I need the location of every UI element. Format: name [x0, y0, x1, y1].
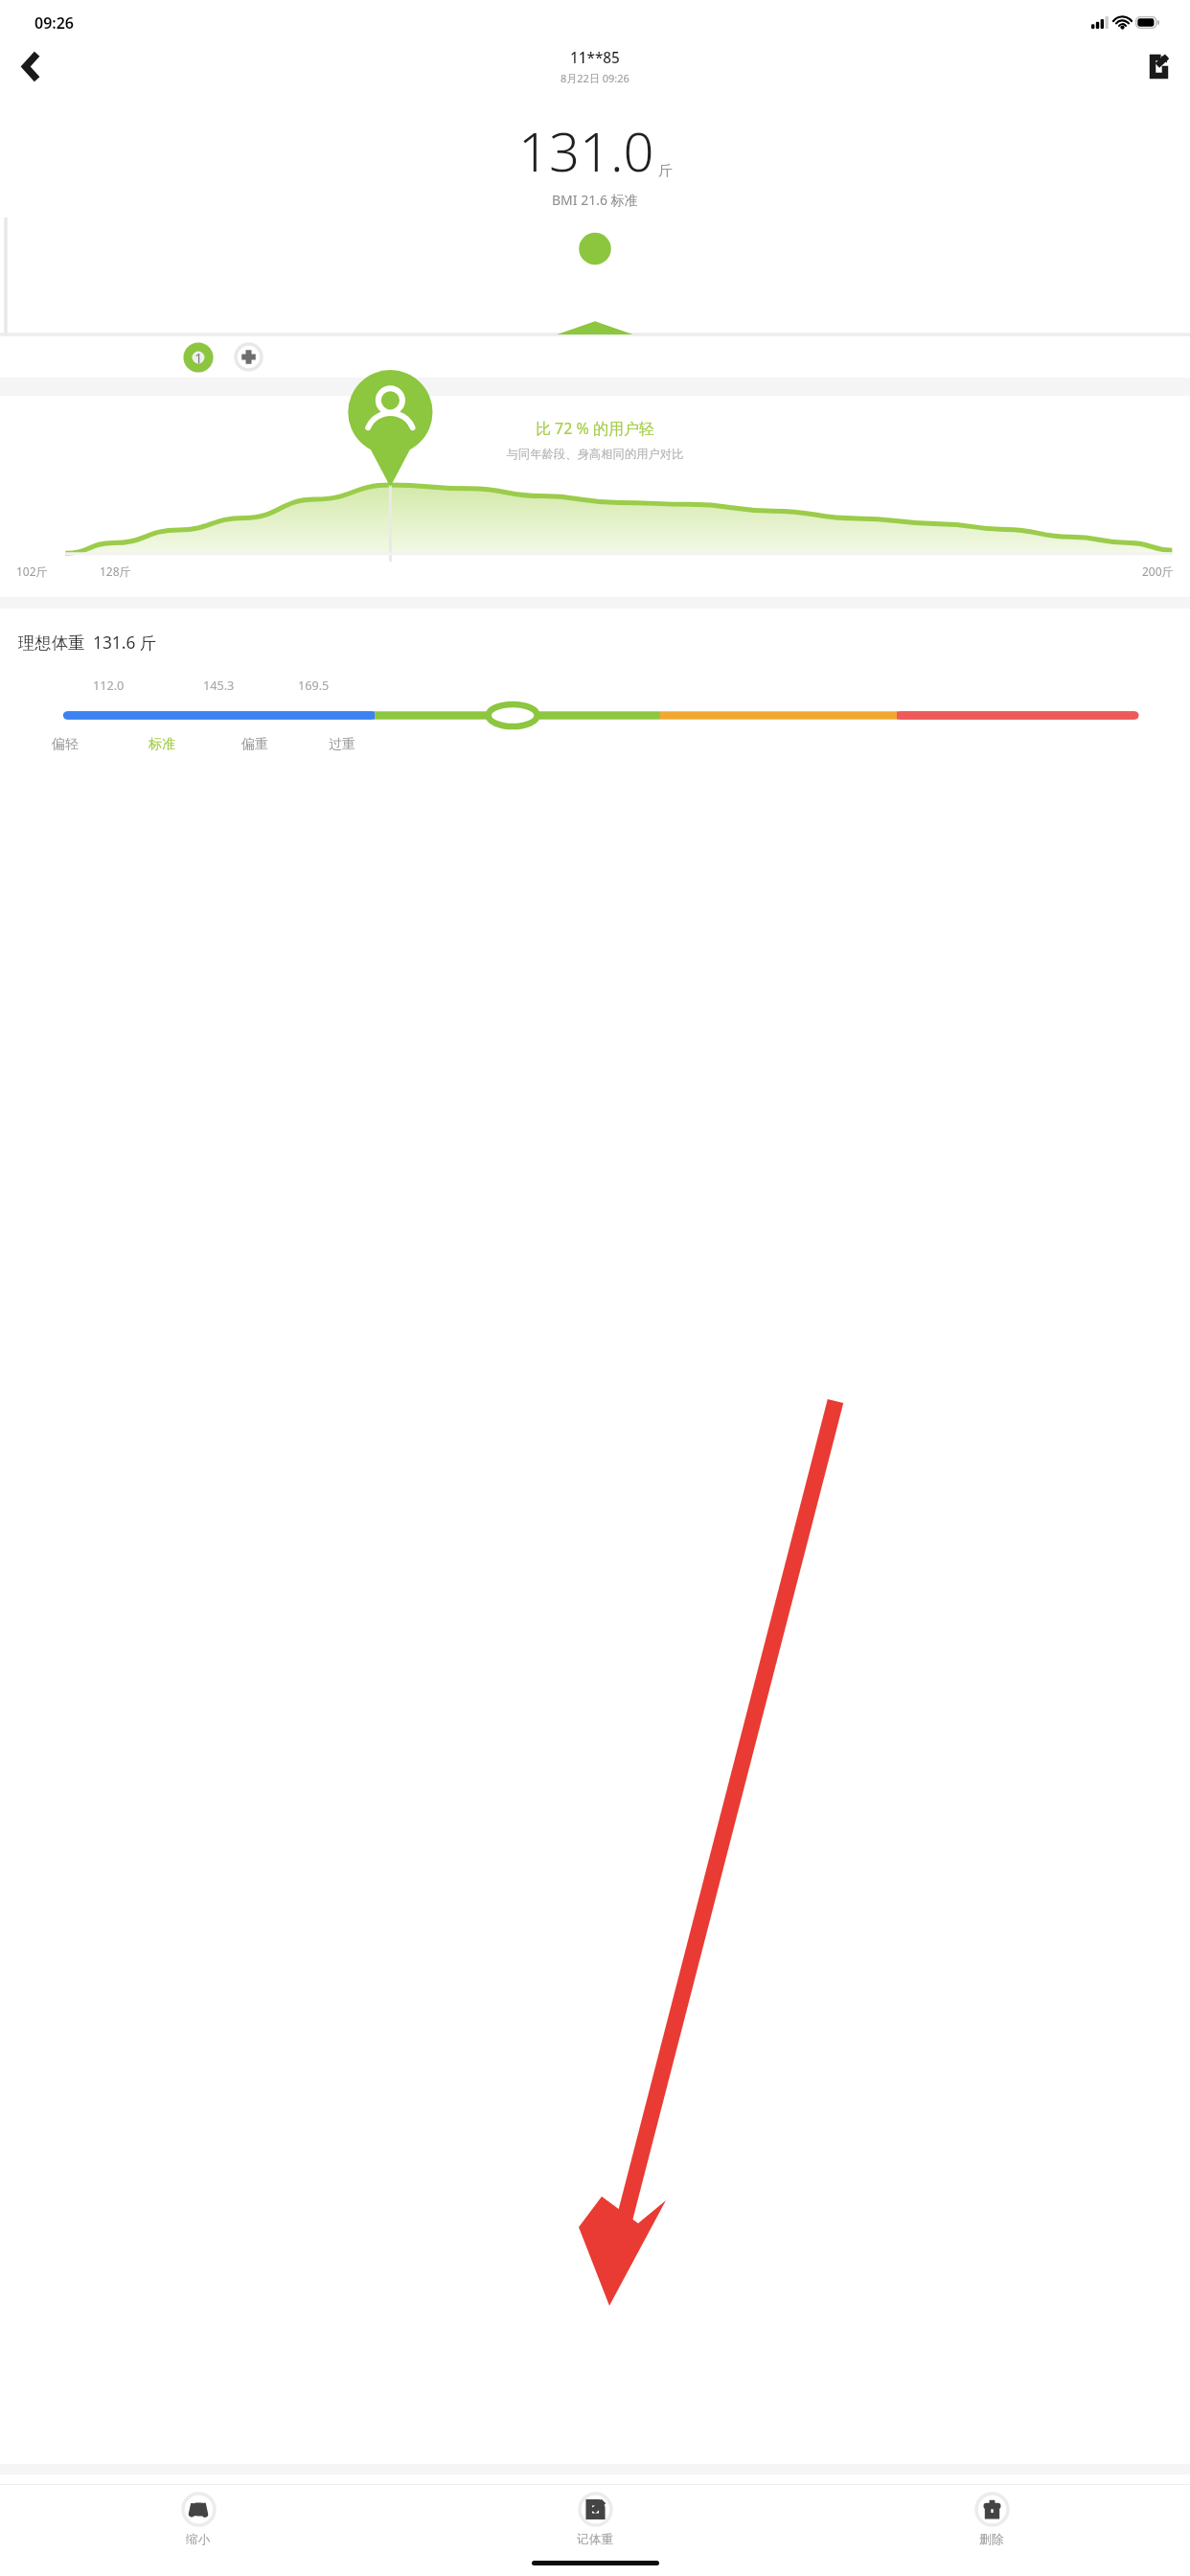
- button[interactable]: Share: [1142, 50, 1176, 83]
- staticText: 8月22日 09:26: [561, 71, 629, 85]
- staticText: 偏轻: [52, 736, 1190, 753]
- staticText: BMI 21.6 标准: [552, 191, 638, 209]
- button[interactable]: 删除: [793, 2485, 1190, 2554]
- staticText: 1: [195, 348, 203, 367]
- staticText: 比 72 % 的用户轻: [0, 418, 1190, 439]
- staticText: 斤: [658, 162, 673, 179]
- staticText: 200斤: [1142, 563, 1174, 579]
- button[interactable]: 1: [183, 342, 214, 373]
- staticText: 131.0: [518, 114, 654, 187]
- staticText: 记体重: [577, 2532, 613, 2547]
- staticText: 缩小: [186, 2532, 211, 2547]
- staticText: 删除: [979, 2532, 1004, 2547]
- staticText: 131.6 斤: [93, 631, 157, 654]
- staticText: 102斤: [16, 563, 48, 579]
- staticText: 理想体重: [18, 632, 85, 654]
- staticText: 偏重: [241, 736, 1190, 753]
- staticText: 标准: [149, 736, 1190, 753]
- button[interactable]: Back: [12, 49, 47, 83]
- staticText: 与同年龄段、身高相同的用户对比: [0, 447, 1190, 462]
- staticText: 169.5: [298, 677, 1190, 693]
- button[interactable]: 记体重: [397, 2485, 793, 2554]
- staticText: 11**85: [570, 48, 620, 68]
- button[interactable]: Add: [234, 342, 263, 372]
- staticText: 128斤: [100, 563, 131, 579]
- staticText: 过重: [329, 736, 1190, 753]
- button[interactable]: 缩小: [0, 2485, 397, 2554]
- staticText: 145.3: [203, 677, 1190, 693]
- staticText: 09:26: [34, 12, 75, 34]
- staticText: 112.0: [93, 677, 1190, 693]
